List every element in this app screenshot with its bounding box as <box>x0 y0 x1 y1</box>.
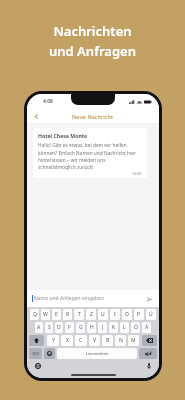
staticText: V <box>93 337 97 344</box>
staticText: R <box>66 311 70 318</box>
button[interactable]: Ü <box>146 309 156 320</box>
staticText: J <box>102 324 104 331</box>
staticText: U <box>101 311 105 318</box>
button[interactable]: Z <box>86 309 96 320</box>
staticText: P <box>137 311 141 318</box>
staticText: A <box>37 324 41 331</box>
staticText: H <box>90 324 94 331</box>
staticText: Neue Nachricht <box>72 113 114 120</box>
button[interactable]: B <box>102 335 113 346</box>
button[interactable]: V <box>89 335 100 346</box>
button[interactable]: Y <box>47 335 59 346</box>
staticText: und Anfragen <box>49 42 136 60</box>
button[interactable]: Shift <box>29 335 44 346</box>
button[interactable]: P <box>134 309 144 320</box>
button[interactable]: T <box>74 309 84 320</box>
staticText: Hallo! Gibt es etwas, bei dem wir helfen… <box>38 142 142 170</box>
button[interactable]: C <box>75 335 87 346</box>
staticText: F <box>68 324 71 331</box>
staticText: 123 <box>32 351 39 356</box>
button[interactable]: Hotel Chesa Monte <box>33 128 147 178</box>
button[interactable]: U <box>98 309 108 320</box>
button[interactable]: A <box>35 322 43 333</box>
staticText: Ü <box>149 311 153 318</box>
staticText: X <box>66 337 69 344</box>
staticText: Leerzeichen <box>86 351 109 356</box>
button[interactable]: H <box>87 322 96 333</box>
button[interactable]: Q <box>30 309 39 320</box>
staticText: G <box>79 324 83 331</box>
staticText: M <box>131 337 136 344</box>
staticText: 4:08 <box>43 98 53 105</box>
button[interactable]: E <box>52 309 61 320</box>
staticText: 16:08 <box>132 171 142 176</box>
button[interactable]: Zurück <box>31 111 42 122</box>
button[interactable]: X <box>61 335 73 346</box>
button[interactable]: Emoji <box>44 348 55 359</box>
button[interactable]: Diktieren <box>144 361 153 370</box>
button[interactable]: R <box>63 309 72 320</box>
staticText: Ä <box>145 324 149 331</box>
button[interactable]: O <box>122 309 132 320</box>
button[interactable]: L <box>120 322 129 333</box>
staticText: E <box>55 311 58 318</box>
staticText: B <box>106 337 110 344</box>
staticText: N <box>119 337 123 344</box>
button[interactable]: Löschen <box>142 335 157 346</box>
staticText: Z <box>90 311 93 318</box>
staticText: I <box>114 311 116 318</box>
button[interactable]: J <box>98 322 107 333</box>
staticText: K <box>112 324 116 331</box>
button[interactable]: Senden <box>144 294 154 304</box>
button[interactable]: Leerzeichen <box>57 348 137 359</box>
staticText: Nachrichten <box>53 22 132 40</box>
button[interactable]: G <box>76 322 85 333</box>
staticText: D <box>57 324 61 331</box>
button[interactable]: I <box>110 309 120 320</box>
staticText: W <box>43 311 48 318</box>
staticText: L <box>123 324 126 331</box>
staticText: Q <box>33 311 37 318</box>
button[interactable]: Ä <box>142 322 151 333</box>
button[interactable]: N <box>115 335 126 346</box>
button[interactable]: M <box>128 335 139 346</box>
button[interactable]: F <box>65 322 74 333</box>
button[interactable]: Eingabe <box>139 348 157 359</box>
staticText: Ö <box>134 324 138 331</box>
button[interactable]: Ö <box>131 322 140 333</box>
staticText: T <box>78 311 81 318</box>
staticText: Name und Anliegen eingeben <box>34 295 144 302</box>
button[interactable]: D <box>55 322 63 333</box>
button[interactable]: Zahlen <box>29 348 42 359</box>
button[interactable]: W <box>41 309 50 320</box>
button[interactable]: Tastatursprache <box>33 361 42 370</box>
button[interactable]: S <box>45 322 53 333</box>
staticText: S <box>48 324 51 331</box>
staticText: Hotel Chesa Monte <box>38 132 88 139</box>
staticText: O <box>125 311 129 318</box>
staticText: C <box>79 337 83 344</box>
button[interactable]: K <box>109 322 118 333</box>
staticText: Y <box>52 337 55 344</box>
